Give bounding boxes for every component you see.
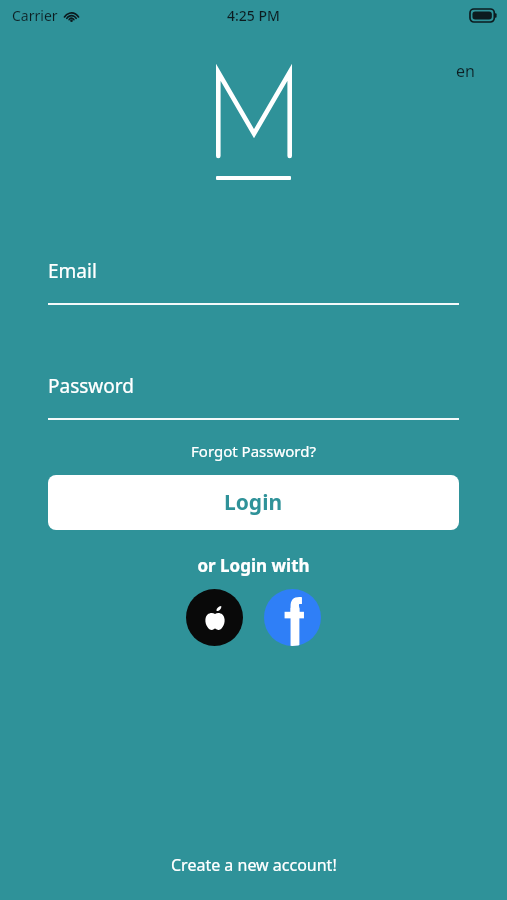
button[interactable]: en [452, 58, 479, 84]
staticText: Forgot Password? [48, 441, 459, 461]
staticText: en [456, 60, 475, 82]
staticText: Create a new account! [171, 854, 337, 876]
staticText: 4:25 PM [227, 6, 280, 25]
button[interactable]: Forgot Password? [48, 439, 459, 463]
button[interactable]: Login [48, 475, 459, 530]
button[interactable]: Login with Facebook [264, 589, 321, 646]
button[interactable]: Email [48, 258, 459, 305]
staticText: Carrier [12, 6, 58, 25]
staticText: Email [48, 258, 97, 284]
button[interactable]: Password [48, 373, 459, 420]
button[interactable]: Login with Apple [186, 589, 243, 646]
staticText: or Login with [48, 554, 459, 577]
staticText: Login [224, 488, 283, 517]
staticText: Password [48, 373, 134, 399]
button[interactable]: Create a new account! [161, 850, 347, 880]
